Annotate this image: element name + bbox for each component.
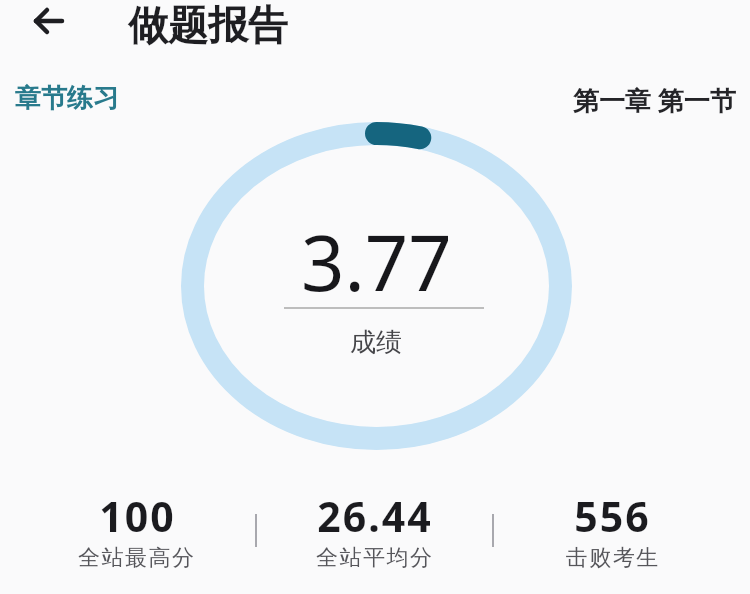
staticText: 全站最高分 <box>78 544 196 572</box>
staticText: 做题报告 <box>128 0 288 50</box>
staticText: 全站平均分 <box>316 544 434 572</box>
staticText: 第一章 第一节 <box>573 82 736 118</box>
staticText: 100 <box>99 488 176 544</box>
staticText: 26.44 <box>317 488 433 544</box>
button[interactable]: 100 <box>16 488 258 544</box>
staticText: 556 <box>574 488 651 544</box>
staticText: 击败考生 <box>565 544 659 572</box>
staticText: 3.77 <box>301 210 452 314</box>
button[interactable] <box>19 0 79 42</box>
button[interactable]: 26.44 <box>255 488 495 544</box>
button[interactable]: 556 <box>492 488 732 544</box>
staticText: 成绩 <box>350 326 402 359</box>
button[interactable]: 章节练习 <box>15 82 119 115</box>
